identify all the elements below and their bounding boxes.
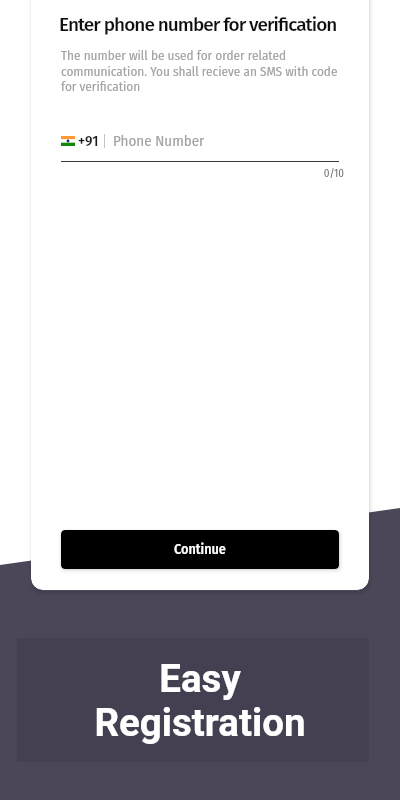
- button[interactable]: Continue: [61, 530, 339, 569]
- staticText: Enter phone number for verification: [59, 13, 337, 36]
- staticText: The number will be used for order relate…: [61, 48, 351, 94]
- staticText: Phone Number: [113, 132, 205, 150]
- staticText: +91: [78, 132, 99, 150]
- staticText: 0/10: [61, 167, 344, 180]
- staticText: Continue: [174, 541, 226, 558]
- staticText: Easy Registration: [94, 656, 306, 745]
